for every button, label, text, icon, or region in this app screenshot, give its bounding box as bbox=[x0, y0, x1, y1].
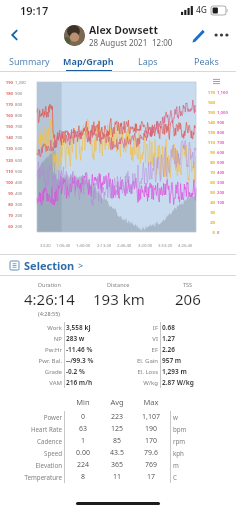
button[interactable]: Summary bbox=[0, 50, 59, 72]
staticText: 12:00 bbox=[152, 37, 173, 48]
staticText: 50 bbox=[203, 190, 215, 196]
staticText: 130 bbox=[1, 146, 13, 152]
staticText: 1:06:40 bbox=[56, 243, 71, 249]
staticText: -0.2 % bbox=[66, 367, 114, 376]
staticText: 140 bbox=[203, 120, 215, 126]
staticText: 600 bbox=[217, 150, 235, 156]
button[interactable]: Peaks bbox=[177, 50, 236, 72]
staticText: 160 bbox=[203, 100, 215, 106]
button[interactable]: Alex Dowsett bbox=[64, 23, 173, 48]
staticText: (4:28:55) bbox=[38, 310, 60, 317]
staticText: 2:13:20 bbox=[97, 243, 112, 249]
staticText: 28 August 2021 bbox=[89, 37, 148, 48]
staticText: 224 bbox=[66, 460, 100, 470]
staticText: --/99.3 % bbox=[66, 356, 114, 365]
staticText: > bbox=[78, 259, 84, 271]
staticText: 1,107 bbox=[134, 412, 168, 422]
staticText: 300 bbox=[217, 180, 235, 186]
staticText: 1,293 m bbox=[162, 367, 236, 376]
staticText: bpm bbox=[173, 425, 236, 433]
staticText: 160 bbox=[1, 113, 13, 119]
staticText: 1,100 bbox=[217, 90, 235, 96]
staticText: 800 bbox=[15, 113, 31, 119]
staticText: 170 bbox=[1, 102, 13, 108]
staticText: Elevation bbox=[0, 461, 62, 469]
staticText: Laps bbox=[138, 55, 158, 67]
staticText: 70 bbox=[1, 213, 13, 219]
staticText: 17 bbox=[134, 472, 168, 482]
staticText: Pw:Hr bbox=[0, 346, 62, 354]
staticText: 3,558 kJ bbox=[66, 323, 114, 332]
staticText: 3:20:00 bbox=[138, 243, 153, 249]
staticText: 0 bbox=[217, 230, 235, 236]
staticText: 1 bbox=[66, 436, 100, 446]
staticText: 40 bbox=[203, 200, 215, 206]
button[interactable]: Selection bbox=[0, 255, 236, 275]
button[interactable]: Chart options bbox=[211, 76, 222, 87]
staticText: 300 bbox=[15, 202, 31, 208]
staticText: 4:26:14 bbox=[24, 289, 75, 309]
staticText: 125 bbox=[100, 424, 134, 434]
staticText: 2.26 bbox=[162, 345, 236, 354]
staticText: 80 bbox=[203, 160, 215, 166]
staticText: 769 bbox=[134, 460, 168, 470]
staticText: 0.00 bbox=[66, 448, 100, 458]
staticText: rpm bbox=[173, 437, 236, 445]
staticText: 1,200 bbox=[15, 80, 31, 86]
staticText: 193 km bbox=[93, 289, 145, 309]
staticText: 283 w bbox=[66, 334, 114, 343]
staticText: 206 bbox=[175, 289, 201, 309]
staticText: 20 bbox=[203, 220, 215, 226]
staticText: 90 bbox=[203, 150, 215, 156]
staticText: 100 bbox=[1, 180, 13, 186]
staticText: VI bbox=[114, 335, 158, 343]
button[interactable]: Edit bbox=[184, 22, 210, 48]
staticText: Pwr. Bal. bbox=[0, 357, 62, 365]
staticText: 90 bbox=[1, 191, 13, 197]
staticText: 200 bbox=[15, 224, 31, 230]
staticText: Avg bbox=[100, 397, 134, 407]
staticText: 600 bbox=[15, 158, 31, 164]
staticText: VAM bbox=[0, 379, 62, 387]
staticText: Duration bbox=[38, 281, 61, 288]
staticText: El. Loss bbox=[114, 368, 158, 376]
staticText: 700 bbox=[15, 135, 31, 141]
staticText: 0.68 bbox=[162, 323, 236, 332]
staticText: 190 bbox=[134, 424, 168, 434]
staticText: Max bbox=[134, 397, 168, 407]
button[interactable]: Map/Graph bbox=[59, 50, 118, 72]
staticText: 79.6 bbox=[134, 448, 168, 458]
staticText: 900 bbox=[15, 91, 31, 97]
staticText: Peaks bbox=[194, 55, 219, 67]
staticText: 400 bbox=[15, 191, 31, 197]
staticText: Min bbox=[66, 397, 100, 407]
staticText: 800 bbox=[15, 102, 31, 108]
staticText: 365 bbox=[100, 460, 134, 470]
staticText: 180 bbox=[1, 91, 13, 97]
staticText: kph bbox=[173, 449, 236, 457]
staticText: NP bbox=[0, 335, 62, 343]
staticText: Grade bbox=[0, 368, 62, 376]
staticText: 1.27 bbox=[162, 334, 236, 343]
staticText: 11 bbox=[100, 472, 134, 482]
staticText: Distance bbox=[107, 281, 130, 288]
staticText: 900 bbox=[217, 120, 235, 126]
staticText: 43.5 bbox=[100, 448, 134, 458]
staticText: 700 bbox=[15, 124, 31, 130]
staticText: Speed bbox=[0, 449, 62, 457]
staticText: 140 bbox=[1, 135, 13, 141]
staticText: Alex Dowsett bbox=[89, 23, 158, 37]
button[interactable]: Laps bbox=[118, 50, 177, 72]
staticText: 4G bbox=[196, 4, 208, 16]
button[interactable]: More options bbox=[210, 22, 232, 48]
staticText: 110 bbox=[203, 140, 215, 146]
staticText: C bbox=[173, 473, 236, 481]
staticText: 70 bbox=[203, 170, 215, 176]
staticText: EF bbox=[114, 346, 158, 354]
staticText: 0 bbox=[203, 230, 215, 236]
staticText: 2:46:40 bbox=[117, 243, 132, 249]
button[interactable]: Back bbox=[0, 20, 30, 50]
staticText: 400 bbox=[217, 170, 235, 176]
staticText: Temperature bbox=[0, 473, 62, 481]
